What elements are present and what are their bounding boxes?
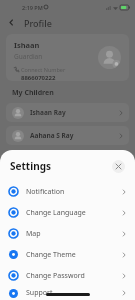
button[interactable]: Change profile photo (98, 46, 121, 69)
button[interactable]: Support (0, 286, 135, 300)
button[interactable]: Map (0, 223, 135, 244)
button[interactable]: Change Password (0, 265, 135, 286)
button[interactable]: Aahana S Ray (6, 126, 129, 145)
staticText: Support (26, 288, 53, 298)
button[interactable]: Notification (0, 181, 135, 202)
staticText: 8866070222 (21, 74, 56, 81)
staticText: Ishaan (14, 40, 40, 50)
button[interactable]: Ishaan Ray (6, 103, 129, 122)
staticText: 2:19 PM (22, 4, 43, 11)
button[interactable]: Change Theme (0, 244, 135, 265)
button[interactable]: Back (5, 16, 18, 29)
staticText: My Children (12, 88, 54, 98)
staticText: Profile (24, 17, 52, 29)
button[interactable]: Ishaan (6, 34, 129, 81)
staticText: Connect Number (21, 66, 66, 73)
button[interactable]: Change Language (0, 202, 135, 223)
staticText: Change Language (26, 208, 86, 218)
staticText: Settings (10, 159, 51, 173)
staticText: Change Password (26, 271, 85, 281)
staticText: Map (26, 229, 41, 239)
staticText: Change Theme (26, 250, 76, 260)
staticText: Ishaan Ray (30, 108, 66, 117)
staticText: Aahana S Ray (30, 131, 74, 140)
staticText: Guardian (14, 52, 43, 61)
staticText: Notification (26, 187, 65, 197)
button[interactable]: Close (112, 160, 125, 173)
